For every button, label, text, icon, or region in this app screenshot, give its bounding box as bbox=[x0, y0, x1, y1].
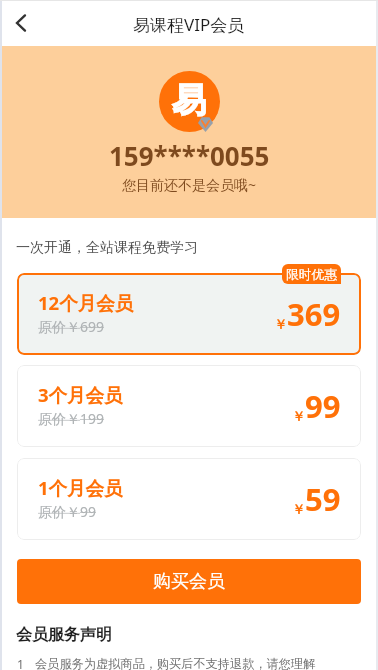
staticText: 159****0055 bbox=[109, 138, 270, 173]
staticText: 原价￥199 bbox=[38, 409, 105, 428]
staticText: 您目前还不是会员哦~ bbox=[122, 175, 257, 194]
button[interactable]: 3个月会员 bbox=[17, 365, 361, 447]
staticText: 易课程VIP会员 bbox=[133, 13, 245, 36]
staticText: 3个月会员 bbox=[38, 382, 123, 407]
staticText: 购买会员 bbox=[153, 570, 225, 593]
staticText: ￥ bbox=[292, 501, 305, 517]
staticText: 一次开通，全站课程免费学习 bbox=[16, 239, 198, 257]
staticText: 会员服务为虚拟商品，购买后不支持退款，请您理解 bbox=[35, 656, 316, 670]
staticText: 369 bbox=[287, 293, 341, 335]
staticText: ￥ bbox=[292, 408, 305, 424]
button[interactable]: 12个月会员 bbox=[17, 273, 361, 355]
staticText: 99 bbox=[305, 385, 341, 427]
staticText: 限时优惠 bbox=[286, 267, 338, 283]
button[interactable]: Back bbox=[0, 2, 42, 44]
staticText: 会员服务声明 bbox=[16, 625, 112, 645]
staticText: 59 bbox=[305, 478, 341, 520]
staticText: 原价￥699 bbox=[38, 317, 105, 336]
staticText: ￥ bbox=[274, 316, 287, 332]
staticText: 12个月会员 bbox=[38, 290, 134, 315]
staticText: 易 bbox=[172, 79, 206, 122]
staticText: 1 bbox=[17, 656, 24, 670]
button[interactable]: 1个月会员 bbox=[17, 458, 361, 540]
button[interactable]: 购买会员 bbox=[17, 559, 361, 604]
staticText: 原价￥99 bbox=[38, 502, 97, 521]
staticText: 1个月会员 bbox=[38, 475, 123, 500]
